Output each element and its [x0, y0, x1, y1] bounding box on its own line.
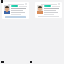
button[interactable]: Status — [44, 5, 51, 7]
button[interactable]: Profile photo — [37, 5, 43, 14]
button[interactable]: More options — [35, 2, 62, 18]
button[interactable]: More options — [2, 2, 29, 19]
button[interactable]: Status — [11, 5, 18, 7]
button[interactable]: Profile photo — [4, 5, 10, 14]
